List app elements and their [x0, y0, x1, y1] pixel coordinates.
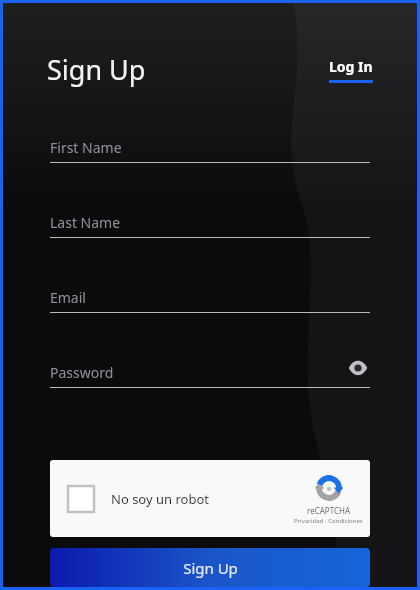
button[interactable]: Log In [329, 57, 373, 83]
staticText: Log In [329, 57, 373, 76]
staticText: Password [50, 363, 114, 382]
button[interactable]: Sign Up [50, 548, 370, 587]
button[interactable]: No soy un robot [50, 460, 370, 537]
staticText: reCAPTCHA [307, 505, 351, 516]
staticText: No soy un robot [111, 490, 209, 508]
staticText: First Name [50, 138, 122, 157]
button[interactable]: Email [50, 279, 370, 354]
staticText: Last Name [50, 213, 121, 232]
staticText: Email [50, 288, 86, 307]
staticText: Sign Up [47, 51, 146, 88]
button[interactable]: Show password [346, 356, 370, 380]
staticText: Sign Up [183, 558, 238, 578]
button[interactable]: Password [50, 354, 370, 429]
staticText: Privacidad - Condiciones [294, 517, 363, 525]
button[interactable]: First Name [50, 129, 370, 204]
button[interactable]: Last Name [50, 204, 370, 279]
